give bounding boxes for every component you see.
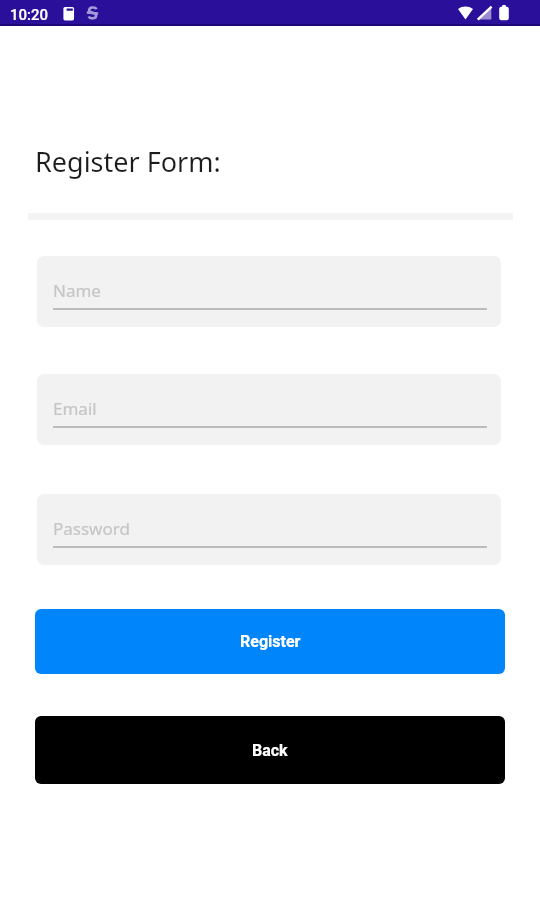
staticText: Back <box>252 741 288 760</box>
button[interactable]: Back <box>35 716 505 784</box>
staticText: Register <box>240 632 301 651</box>
staticText: Register Form: <box>35 143 221 180</box>
staticText: Name <box>53 279 101 302</box>
other: Battery <box>499 4 509 21</box>
button[interactable]: Password <box>37 494 501 565</box>
button[interactable]: Register <box>35 609 505 674</box>
staticText: 10:20 <box>10 6 49 24</box>
button[interactable]: Name <box>37 256 501 327</box>
other: Mobile signal <box>476 5 493 21</box>
staticText: Email <box>53 397 97 420</box>
button[interactable]: Email <box>37 374 501 445</box>
other: Notes notification <box>62 6 76 21</box>
staticText: Password <box>53 517 130 540</box>
other: Wi-Fi <box>457 5 474 20</box>
other: App notification <box>86 5 99 21</box>
